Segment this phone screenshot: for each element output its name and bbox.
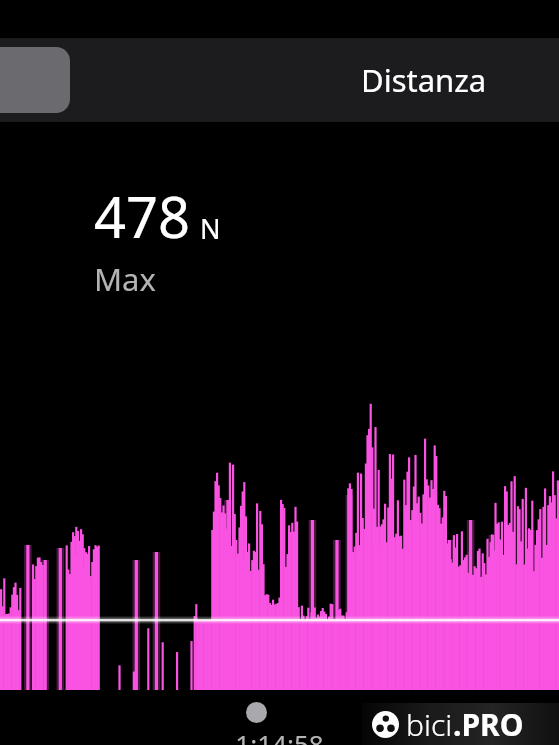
- staticText: 1:14:58: [0, 726, 559, 745]
- button[interactable]: Distanza: [361, 59, 487, 101]
- button[interactable]: Scrubber: [246, 702, 267, 723]
- staticText: .PRO: [453, 704, 524, 745]
- other: bici.PRO logo: [372, 711, 399, 738]
- button[interactable]: [0, 0, 559, 745]
- staticText: N: [200, 210, 221, 247]
- staticText: bici: [406, 704, 453, 745]
- button[interactable]: Segment: [0, 47, 70, 113]
- staticText: 478: [94, 178, 191, 254]
- staticText: Max: [94, 258, 156, 300]
